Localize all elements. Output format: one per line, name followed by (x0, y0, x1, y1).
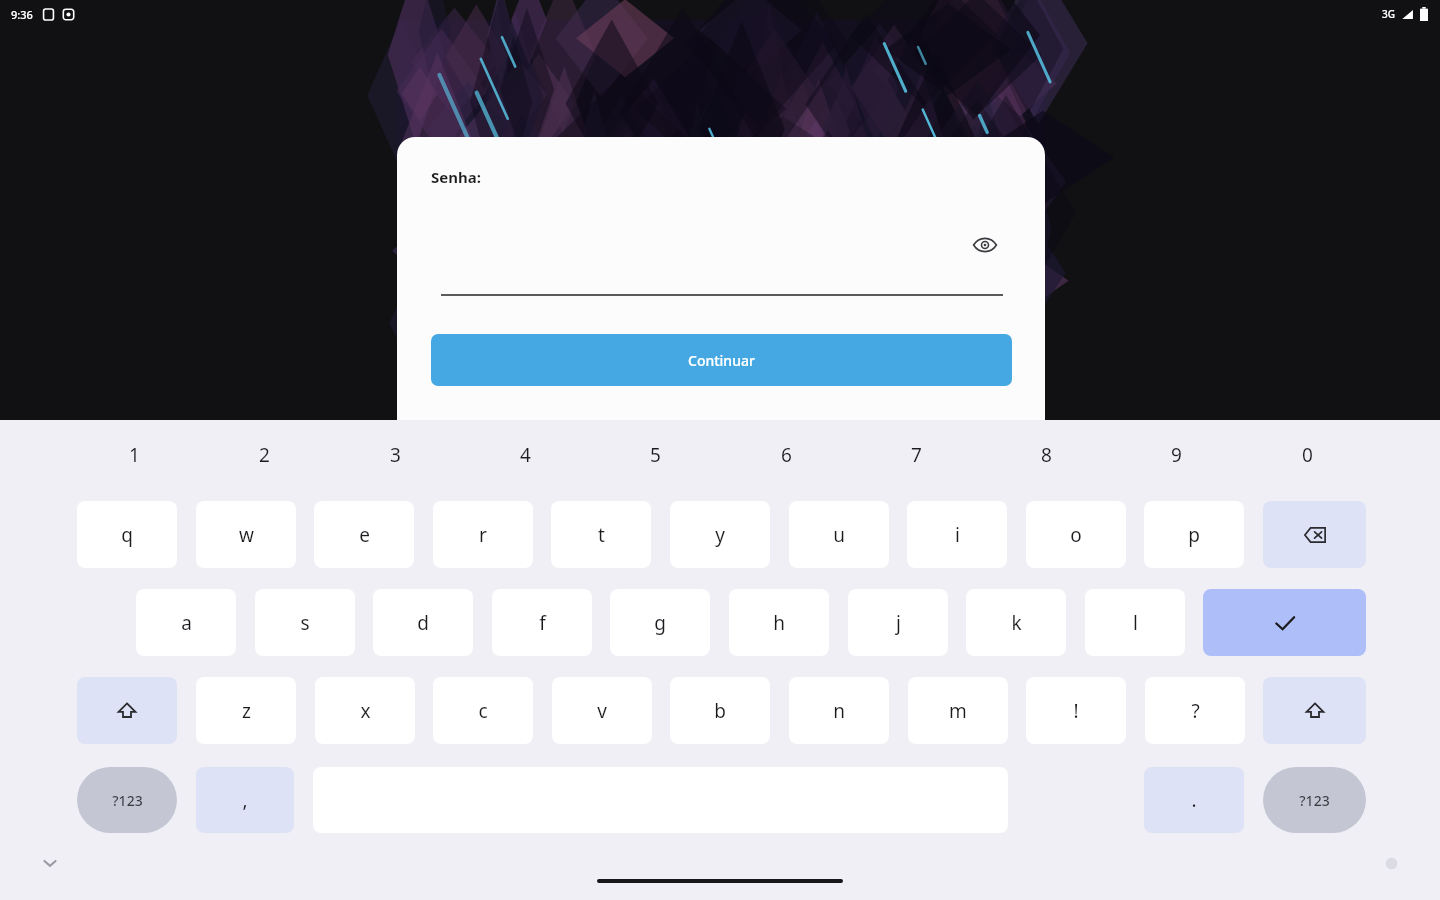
staticText: l (1133, 610, 1138, 636)
button[interactable]: p (1144, 501, 1244, 568)
staticText: t (598, 522, 605, 548)
button[interactable]: f (492, 589, 592, 656)
button[interactable]: u (789, 501, 889, 568)
button[interactable]: j (848, 589, 948, 656)
button[interactable]: , (196, 767, 294, 833)
button[interactable]: 4 (493, 432, 557, 478)
staticText: 7 (911, 442, 922, 468)
staticText: w (239, 522, 254, 548)
button[interactable]: n (789, 677, 889, 744)
staticText: Continuar (688, 351, 755, 370)
button[interactable]: ! (1026, 677, 1126, 744)
staticText: 8 (1041, 442, 1052, 468)
button[interactable]: a (136, 589, 236, 656)
button[interactable]: 2 (232, 432, 296, 478)
button[interactable]: ?123 (77, 767, 177, 833)
staticText: c (478, 698, 488, 724)
staticText: k (1011, 610, 1022, 636)
staticText: d (417, 610, 429, 636)
button[interactable]: h (729, 589, 829, 656)
staticText: ?123 (112, 791, 143, 810)
staticText: 0 (1302, 442, 1313, 468)
button[interactable]: s (255, 589, 355, 656)
staticText: y (715, 522, 725, 548)
button[interactable]: Apagar (1263, 501, 1366, 568)
staticText: j (896, 610, 901, 636)
staticText: . (1191, 787, 1197, 813)
button[interactable]: o (1026, 501, 1126, 568)
staticText: 6 (781, 442, 792, 468)
button[interactable]: k (966, 589, 1066, 656)
button[interactable]: 3 (363, 432, 427, 478)
button[interactable]: . (1144, 767, 1244, 833)
staticText: f (539, 610, 546, 636)
button[interactable]: 8 (1014, 432, 1078, 478)
staticText: 2 (259, 442, 270, 468)
button[interactable]: ?123 (1263, 767, 1366, 833)
staticText: Senha: (431, 167, 481, 187)
staticText: v (597, 698, 607, 724)
staticText: z (242, 698, 251, 724)
button[interactable]: t (551, 501, 651, 568)
button[interactable]: e (314, 501, 414, 568)
button[interactable]: 1 (102, 432, 166, 478)
button[interactable]: Shift (1263, 677, 1366, 744)
staticText: 9 (1171, 442, 1182, 468)
button[interactable]: m (908, 677, 1008, 744)
staticText: i (955, 522, 960, 548)
staticText: q (121, 522, 133, 548)
staticText: 3G (1382, 7, 1395, 21)
button[interactable]: 0 (1275, 432, 1339, 478)
staticText: r (479, 522, 487, 548)
button[interactable]: v (552, 677, 652, 744)
staticText: , (242, 787, 248, 813)
staticText: ! (1073, 698, 1079, 724)
button[interactable]: y (670, 501, 770, 568)
button[interactable]: 6 (754, 432, 818, 478)
staticText: 1 (129, 442, 140, 468)
button[interactable]: ? (1145, 677, 1245, 744)
button[interactable]: Mostrar senha (965, 225, 1005, 265)
staticText: e (359, 522, 370, 548)
staticText: b (714, 698, 726, 724)
staticText: u (833, 522, 845, 548)
button[interactable]: Enter (1203, 589, 1366, 656)
staticText: a (181, 610, 192, 636)
staticText: 4 (520, 442, 531, 468)
staticText: m (949, 698, 967, 724)
staticText: p (1188, 522, 1200, 548)
button[interactable]: i (907, 501, 1007, 568)
staticText: n (833, 698, 845, 724)
button[interactable]: 5 (623, 432, 687, 478)
button[interactable]: Opções (1374, 846, 1408, 880)
button[interactable]: z (196, 677, 296, 744)
button[interactable]: r (433, 501, 533, 568)
staticText: ? (1191, 698, 1200, 724)
staticText: 3 (390, 442, 401, 468)
button[interactable]: x (315, 677, 415, 744)
button[interactable]: d (373, 589, 473, 656)
staticText: 5 (650, 442, 661, 468)
staticText: x (360, 698, 371, 724)
button[interactable]: Shift (77, 677, 177, 744)
button[interactable]: b (670, 677, 770, 744)
button[interactable]: q (77, 501, 177, 568)
button[interactable]: Ocultar teclado (32, 845, 68, 881)
button[interactable]: l (1085, 589, 1185, 656)
button[interactable]: g (610, 589, 710, 656)
button[interactable]: 7 (884, 432, 948, 478)
staticText: g (654, 610, 666, 636)
button[interactable]: c (433, 677, 533, 744)
staticText: ?123 (1299, 791, 1330, 810)
staticText: s (300, 610, 310, 636)
staticText: 9:36 (11, 7, 33, 22)
button[interactable]: Continuar (431, 334, 1012, 386)
staticText: o (1070, 522, 1082, 548)
button[interactable]: 9 (1144, 432, 1208, 478)
staticText: h (773, 610, 785, 636)
button[interactable]: w (196, 501, 296, 568)
